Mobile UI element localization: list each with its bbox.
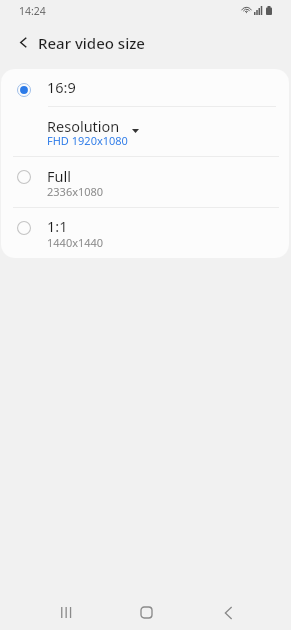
- button[interactable]: Full: [1, 156, 289, 207]
- button[interactable]: Recent apps: [45, 594, 86, 630]
- staticText: 14:24: [19, 4, 46, 18]
- button[interactable]: Home: [126, 594, 167, 630]
- staticText: 1440x1440: [47, 235, 104, 250]
- button[interactable]: Back: [208, 594, 249, 630]
- button[interactable]: 1:1: [1, 207, 289, 258]
- staticText: FHD 1920x1080: [47, 133, 128, 148]
- staticText: Rear video size: [38, 33, 145, 53]
- button[interactable]: Resolution: [1, 106, 289, 156]
- staticText: Resolution: [47, 116, 120, 136]
- staticText: 2336x1080: [47, 184, 104, 199]
- staticText: 16:9: [47, 77, 76, 97]
- button[interactable]: Navigate up: [5, 24, 41, 60]
- staticText: Full: [47, 166, 71, 186]
- button[interactable]: 16:9: [1, 69, 289, 106]
- staticText: 1:1: [47, 216, 68, 236]
